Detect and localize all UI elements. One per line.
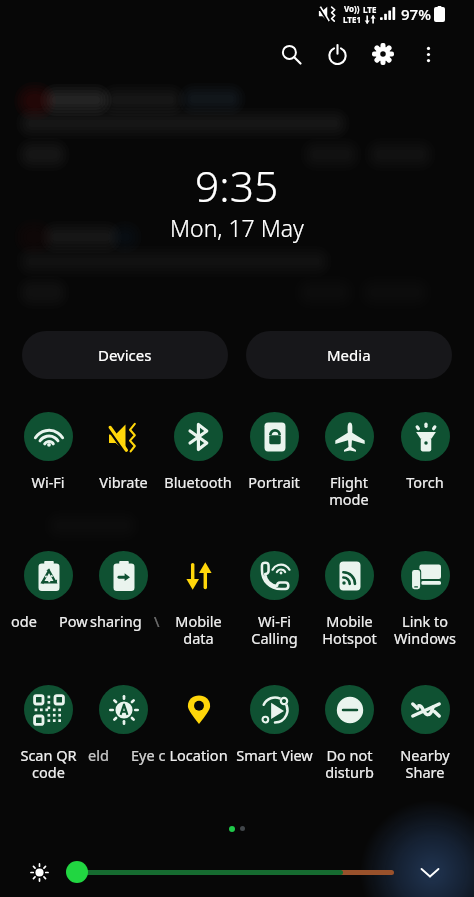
staticText: Location: [169, 745, 228, 765]
staticText: Nearby Share: [400, 745, 450, 782]
button[interactable]: Settings: [360, 31, 406, 77]
staticText: 97%: [401, 4, 431, 24]
button[interactable]: [86, 547, 160, 633]
staticText: Wi-Fi: [31, 472, 65, 492]
staticText: Smart View: [236, 745, 313, 765]
staticText: Vo)): [344, 3, 360, 14]
button[interactable]: [312, 547, 386, 633]
staticText: Wi-Fi Calling: [251, 611, 298, 648]
button[interactable]: Brightness: [20, 853, 58, 891]
staticText: eld: [88, 745, 109, 765]
button[interactable]: [237, 681, 311, 767]
staticText: Vibrate: [99, 472, 148, 492]
button[interactable]: [237, 547, 311, 633]
button[interactable]: [161, 547, 235, 633]
button[interactable]: [312, 681, 386, 767]
button[interactable]: Search: [268, 31, 314, 77]
button[interactable]: Power off: [314, 31, 360, 77]
button[interactable]: [86, 681, 160, 767]
staticText: Mobile Hotspot: [322, 611, 377, 648]
staticText: Devices: [98, 345, 152, 365]
staticText: LTE1: [343, 14, 361, 25]
button[interactable]: [312, 408, 386, 494]
button[interactable]: [86, 408, 160, 494]
button[interactable]: [237, 408, 311, 494]
button[interactable]: Media: [246, 331, 452, 379]
staticText: 9:35: [195, 157, 279, 215]
staticText: Mon, 17 May: [170, 212, 304, 243]
button[interactable]: [161, 408, 235, 494]
button[interactable]: [388, 681, 462, 767]
button[interactable]: Devices: [22, 331, 228, 379]
staticText: Pow: [59, 611, 88, 631]
staticText: Media: [327, 345, 371, 365]
staticText: Scan QR code: [20, 745, 77, 782]
staticText: \: [154, 611, 160, 631]
staticText: Link to Windows: [394, 611, 456, 648]
button[interactable]: [66, 861, 396, 883]
button[interactable]: Collapse: [408, 850, 452, 894]
button[interactable]: [161, 681, 235, 767]
button[interactable]: [388, 408, 462, 494]
staticText: Eye c: [131, 745, 166, 765]
button[interactable]: [11, 547, 85, 633]
staticText: Bluetooth: [164, 472, 232, 492]
button[interactable]: [11, 408, 85, 494]
button[interactable]: [388, 547, 462, 633]
staticText: Mobile data: [175, 611, 222, 648]
button[interactable]: [11, 681, 85, 767]
staticText: LTE: [363, 4, 377, 15]
staticText: Do not disturb: [325, 745, 374, 782]
staticText: ode: [11, 611, 37, 631]
staticText: sharing: [90, 611, 142, 631]
staticText: Portrait: [248, 472, 300, 492]
button[interactable]: More options: [406, 32, 450, 76]
staticText: Torch: [406, 472, 444, 492]
staticText: Flight mode: [329, 472, 369, 509]
